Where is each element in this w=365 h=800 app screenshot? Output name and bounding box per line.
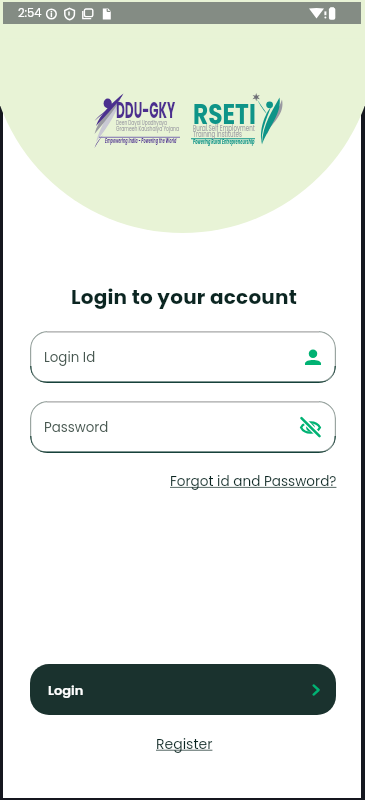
button[interactable]: Forgot id and Password? [170,472,337,491]
button[interactable]: Login Id [30,331,336,383]
button[interactable]: Password [30,401,336,453]
staticText: 2:54 [18,5,42,21]
staticText: DDU-GKY [116,95,176,126]
other: Show password [300,417,321,438]
staticText: Forgot id and Password? [170,472,337,491]
staticText: RSETI [193,95,256,133]
staticText: Empowering India - Powering the World [105,136,176,145]
other: User [305,349,321,365]
staticText: Deen Dayal Upadhyaya [116,117,167,128]
staticText: Powering Rural Entrepreneurship [193,137,255,146]
other: Proceed [310,684,322,696]
button[interactable]: Register [156,734,213,754]
staticText: Grameen Kaushalya Yojana [116,123,180,134]
button[interactable]: Login [30,664,336,715]
staticText: Login to your account [5,283,363,311]
staticText: Rural Self Employment [193,123,255,134]
staticText: Register [156,734,213,754]
staticText: Password [44,418,109,437]
staticText: Login Id [44,348,96,367]
staticText: Training Institutes [193,129,242,140]
staticText: Login [48,681,84,699]
